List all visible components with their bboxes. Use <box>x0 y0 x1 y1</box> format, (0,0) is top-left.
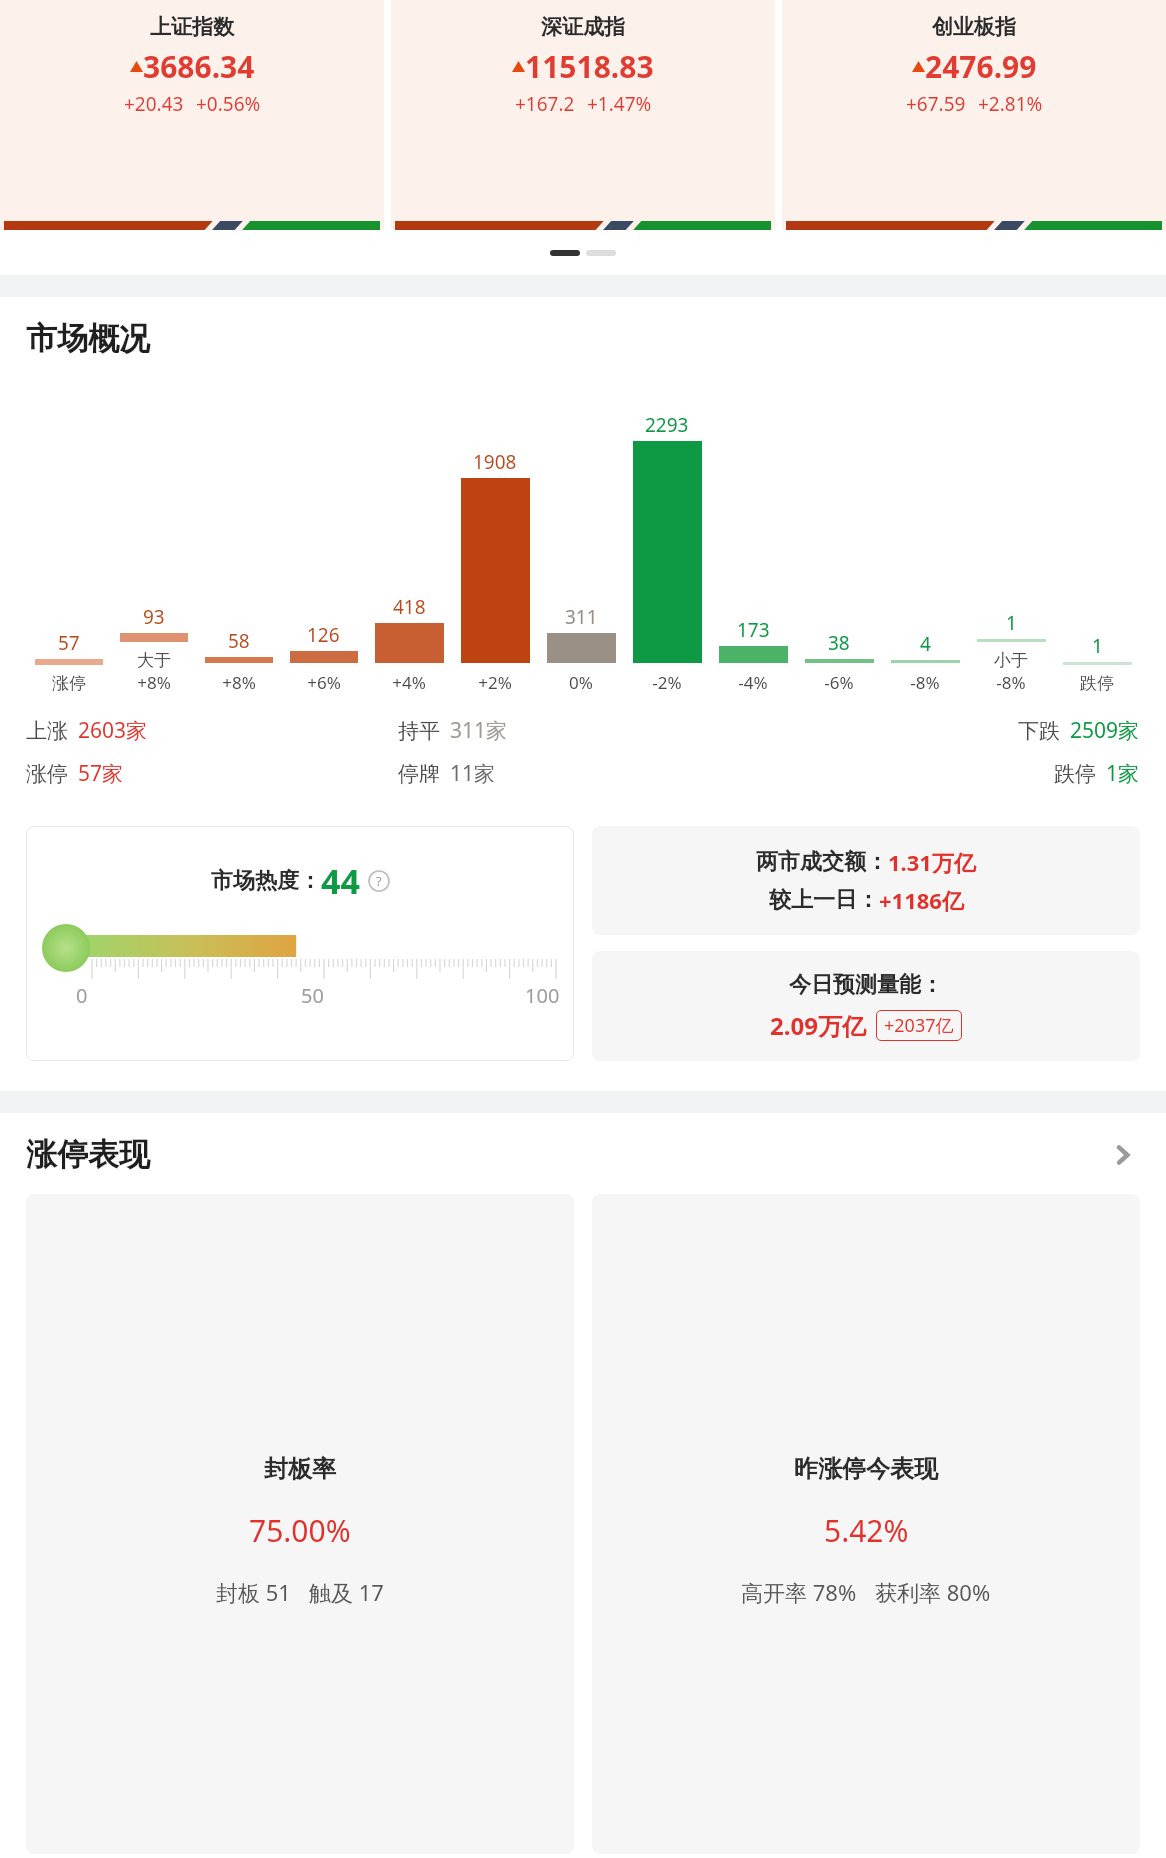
staticText: 38 <box>828 630 850 656</box>
staticText: 3686.34 <box>143 46 255 87</box>
staticText: 涨停表现 <box>26 1135 150 1174</box>
staticText: 5.42% <box>824 1510 909 1551</box>
staticText: 126 <box>307 622 340 648</box>
button[interactable]: 说明 <box>368 870 390 892</box>
staticText: 上证指数 <box>150 14 234 40</box>
staticText: 涨停 <box>52 673 86 694</box>
staticText: 93 <box>143 604 165 630</box>
staticText: 两市成交额： <box>756 848 888 876</box>
staticText: 1.31万亿 <box>888 847 976 877</box>
staticText: 2.09万亿 <box>770 1009 866 1042</box>
button[interactable]: 封板率 <box>26 1194 574 1854</box>
staticText: -6% <box>824 671 854 694</box>
staticText: 大于 <box>137 650 171 671</box>
staticText: 50 <box>301 982 324 1009</box>
button[interactable]: 创业板指 <box>782 0 1166 230</box>
staticText: 4 <box>920 631 931 657</box>
staticText: 下跌 <box>1018 718 1060 744</box>
staticText: 市场概况 <box>26 319 150 358</box>
staticText: -8% <box>910 671 940 694</box>
staticText: 封板率 <box>264 1454 336 1484</box>
staticText: 57 <box>58 630 80 656</box>
staticText: 311家 <box>450 716 508 745</box>
button[interactable]: 市场热度： <box>26 826 574 1061</box>
staticText: 418 <box>393 594 426 620</box>
staticText: 昨涨停今表现 <box>794 1454 938 1484</box>
staticText: 75.00% <box>249 1510 351 1551</box>
button[interactable]: 深证成指 <box>391 0 775 230</box>
staticText: 311 <box>565 604 598 630</box>
staticText: 1 <box>1006 610 1017 636</box>
button[interactable]: 今日预测量能： <box>592 951 1140 1061</box>
staticText: 触及 17 <box>309 1577 384 1607</box>
staticText: -4% <box>738 671 768 694</box>
staticText: 停牌 <box>398 761 440 787</box>
staticText: +8% <box>137 671 171 694</box>
button[interactable]: 两市成交额： <box>592 826 1140 935</box>
staticText: +1.47% <box>587 91 652 117</box>
other: 查看更多 <box>1106 1138 1140 1172</box>
staticText: 1家 <box>1106 759 1140 788</box>
staticText: +2% <box>478 671 512 694</box>
staticText: 173 <box>737 617 770 643</box>
staticText: 创业板指 <box>932 14 1016 40</box>
staticText: 2603家 <box>78 716 148 745</box>
staticText: 1 <box>1092 633 1103 659</box>
staticText: 小于 <box>994 650 1028 671</box>
button[interactable]: 上证指数 <box>0 0 384 230</box>
staticText: 深证成指 <box>541 14 625 40</box>
staticText: 57家 <box>78 759 124 788</box>
staticText: 今日预测量能： <box>789 971 943 999</box>
staticText: 涨停 <box>26 761 68 787</box>
staticText: 市场热度： <box>211 867 321 895</box>
staticText: 0 <box>76 982 88 1009</box>
staticText: -2% <box>652 671 682 694</box>
staticText: 100 <box>525 982 560 1009</box>
staticText: +4% <box>392 671 426 694</box>
staticText: +6% <box>307 671 341 694</box>
staticText: ? <box>376 872 382 890</box>
staticText: 2476.99 <box>925 46 1037 87</box>
staticText: +20.43 <box>124 91 184 117</box>
staticText: 2293 <box>645 412 689 438</box>
staticText: 跌停 <box>1080 673 1114 694</box>
staticText: +2.81% <box>978 91 1043 117</box>
staticText: +0.56% <box>196 91 261 117</box>
staticText: 1908 <box>473 449 517 475</box>
staticText: 持平 <box>398 718 440 744</box>
staticText: 高开率 78% <box>741 1577 857 1607</box>
staticText: 44 <box>321 858 360 904</box>
staticText: +2037亿 <box>884 1013 954 1038</box>
staticText: -8% <box>996 671 1026 694</box>
staticText: 58 <box>228 628 250 654</box>
staticText: +1186亿 <box>879 885 964 915</box>
staticText: +8% <box>222 671 256 694</box>
staticText: 较上一日： <box>769 886 879 914</box>
button[interactable]: 涨停表现 <box>26 1135 1140 1174</box>
staticText: +67.59 <box>906 91 966 117</box>
staticText: 2509家 <box>1070 716 1140 745</box>
staticText: 跌停 <box>1054 761 1096 787</box>
button[interactable]: 昨涨停今表现 <box>592 1194 1140 1854</box>
staticText: 11518.83 <box>525 46 654 87</box>
staticText: 0% <box>569 671 593 694</box>
staticText: 上涨 <box>26 718 68 744</box>
staticText: +167.2 <box>515 91 575 117</box>
staticText: 11家 <box>450 759 496 788</box>
staticText: 封板 51 <box>216 1577 291 1607</box>
staticText: 获利率 80% <box>875 1577 991 1607</box>
